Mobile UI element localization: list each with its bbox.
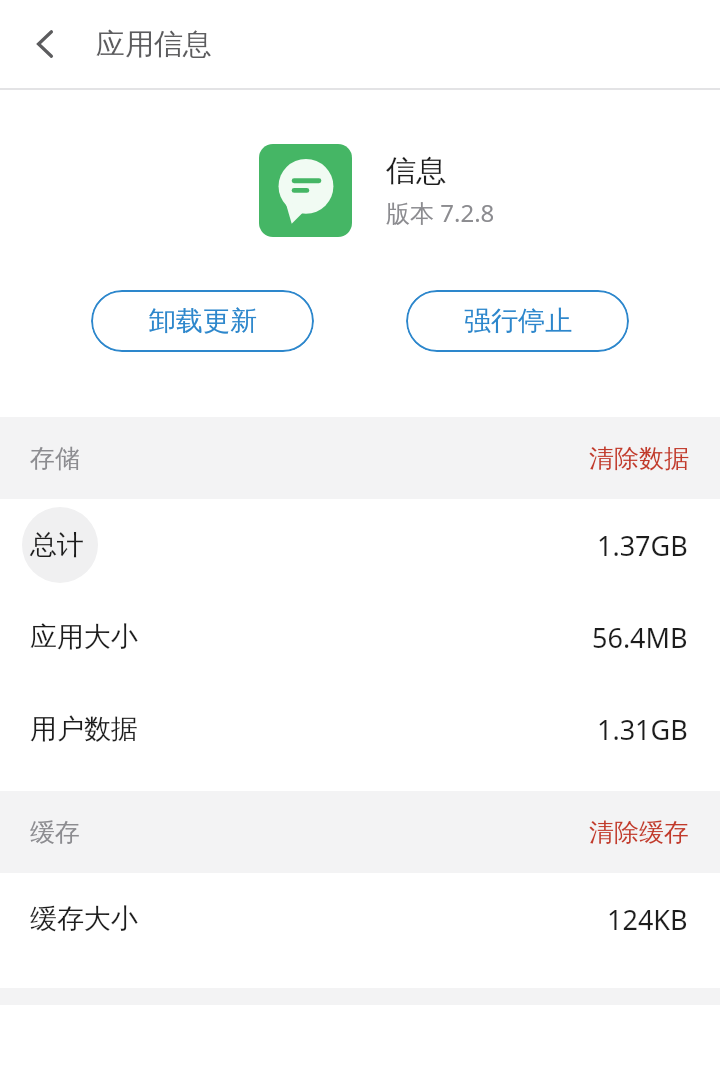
button[interactable]: 缓存大小 (0, 873, 720, 965)
staticText: 用户数据 (30, 712, 138, 746)
button[interactable]: 卸载更新 (91, 290, 314, 352)
staticText: 缓存 (30, 817, 80, 848)
staticText: 版本 7.2.8 (386, 196, 495, 229)
staticText: 存储 (30, 443, 80, 474)
button[interactable]: 清除缓存 (558, 805, 720, 860)
staticText: 信息 (386, 152, 446, 190)
staticText: 强行停止 (464, 304, 572, 338)
staticText: 1.31GB (597, 711, 688, 748)
staticText: 1.37GB (597, 527, 688, 564)
button[interactable]: 返回 (14, 12, 78, 76)
staticText: 124KB (607, 901, 688, 938)
button[interactable]: 清除数据 (558, 431, 720, 486)
button[interactable]: 应用大小 (0, 591, 720, 683)
staticText: 缓存大小 (30, 902, 138, 936)
staticText: 应用信息 (96, 26, 212, 63)
staticText: 清除数据 (589, 443, 689, 474)
button[interactable]: 总计 (0, 499, 720, 591)
staticText: 卸载更新 (149, 304, 257, 338)
staticText: 应用大小 (30, 620, 138, 654)
button[interactable]: 强行停止 (406, 290, 629, 352)
staticText: 清除缓存 (589, 817, 689, 848)
staticText: 总计 (30, 528, 84, 562)
button[interactable]: 用户数据 (0, 683, 720, 775)
staticText: 56.4MB (592, 619, 688, 656)
